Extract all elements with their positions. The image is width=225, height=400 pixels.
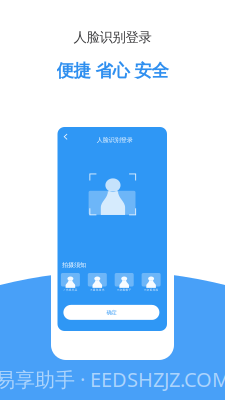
staticText: 勿遮挡脸 xyxy=(146,288,158,291)
button[interactable]: Back xyxy=(63,133,70,141)
staticText: ✕ xyxy=(144,288,146,291)
staticText: 确定 xyxy=(106,309,116,316)
staticText: 避免逆光 xyxy=(93,288,105,291)
staticText: ✓ xyxy=(63,288,65,291)
staticText: ✕ xyxy=(90,288,92,291)
staticText: 人脸识别登录 xyxy=(97,136,133,144)
staticText: 光线充足 xyxy=(66,288,78,291)
staticText: ✕ xyxy=(117,288,119,291)
staticText: 拍摄须知 xyxy=(62,261,86,269)
staticText: 便捷 省心 安全 xyxy=(56,60,168,81)
staticText: 易享助手 · EEDSHZJZ.COM xyxy=(0,366,225,393)
staticText: 勿戴帽子 xyxy=(119,288,131,291)
staticText: 人脸识别登录 xyxy=(73,29,151,45)
button[interactable]: 确定 xyxy=(63,305,159,320)
